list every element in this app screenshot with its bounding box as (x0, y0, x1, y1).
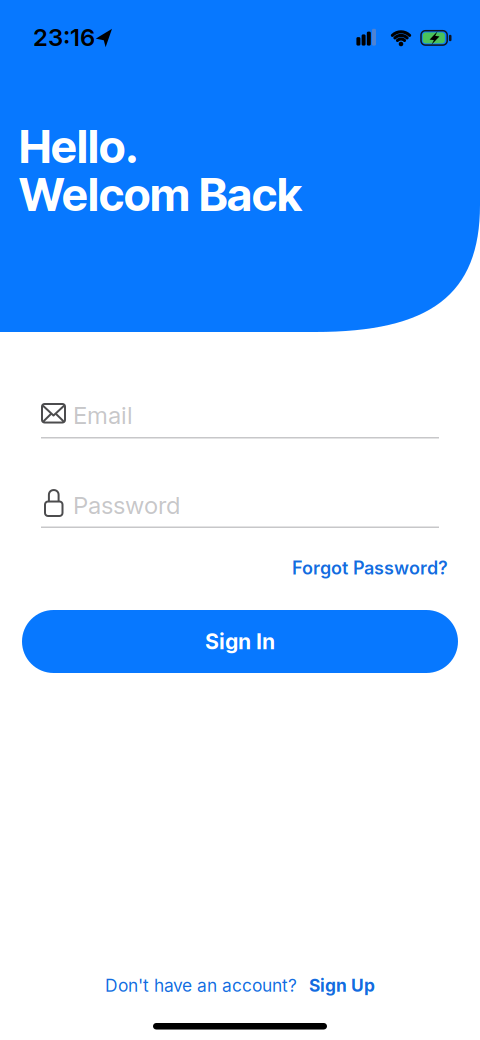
staticText: Welcom Back (19, 167, 302, 222)
button[interactable]: Email (41, 403, 439, 440)
staticText: Email (73, 401, 133, 429)
staticText: 23:16 (33, 23, 95, 51)
button[interactable]: Sign Up (309, 975, 375, 996)
staticText: Sign Up (309, 975, 375, 996)
staticText: Hello. (19, 119, 139, 174)
staticText: Forgot Password? (292, 557, 448, 579)
staticText: Password (73, 491, 180, 519)
button[interactable]: Password (41, 489, 439, 529)
staticText: Sign In (205, 629, 275, 654)
button[interactable]: Forgot Password? (292, 557, 448, 579)
staticText: Don't have an account? (105, 975, 297, 996)
button[interactable]: Sign In (22, 610, 458, 673)
